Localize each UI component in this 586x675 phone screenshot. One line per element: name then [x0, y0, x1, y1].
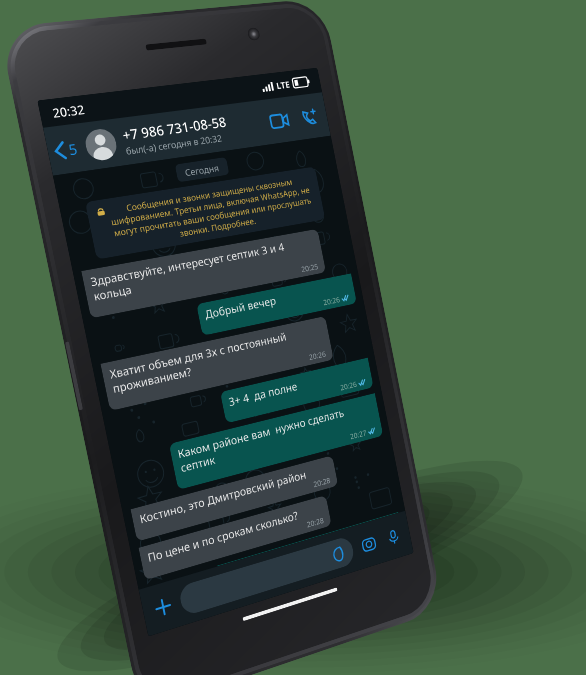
staticText: Хватит объем для 3х с постоянный прожива…	[108, 321, 325, 396]
staticText: Каком районе вам нужно сделать септик	[176, 398, 375, 475]
staticText: LTE	[275, 78, 291, 91]
staticText: 20:26	[308, 349, 327, 362]
staticText: 20:28	[312, 475, 332, 489]
staticText: был(-а) сегодня в 20:32	[125, 131, 223, 157]
button[interactable]: Хватит объем для 3х с постоянный прожива…	[100, 316, 334, 411]
button[interactable]: Contact photo	[83, 127, 119, 162]
staticText: Костино, это Дмитровский район	[138, 467, 307, 527]
button[interactable]: Костино, это Дмитровский район	[130, 455, 338, 542]
button[interactable]: +7 986 731-08-58	[121, 108, 267, 157]
button[interactable]: Back, 5 unread	[45, 132, 85, 168]
button[interactable]: По цене и по срокам сколько?	[138, 495, 332, 580]
staticText: Здравствуйте, интересует септик 3 и 4 ко…	[89, 234, 318, 304]
button[interactable]: Voice call	[290, 97, 328, 136]
staticText: Сообщения и звонки защищены сквозным шиф…	[106, 173, 316, 250]
button[interactable]: 3+ 4 да полне	[220, 357, 374, 423]
staticText: 20:27	[349, 427, 368, 441]
button[interactable]: Сообщения и звонки защищены сквозным шиф…	[85, 166, 325, 260]
staticText: 20:26	[322, 294, 341, 307]
button[interactable]: Attach	[148, 590, 179, 624]
staticText: По цене и по срокам сколько?	[146, 507, 300, 565]
button[interactable]: У нас 5500 за одно кольцо	[217, 512, 399, 566]
button[interactable]	[178, 535, 356, 617]
button[interactable]: Camera	[356, 529, 382, 560]
staticText: 20:25	[300, 261, 320, 274]
button[interactable]: Voice message	[380, 522, 406, 552]
button[interactable]: Каком районе вам нужно сделать септик	[169, 393, 383, 490]
staticText: 20:32	[51, 100, 86, 121]
staticText: Добрый вечер	[203, 292, 278, 322]
staticText: 20:26	[339, 379, 358, 392]
button[interactable]: Video call	[260, 102, 297, 139]
staticText: 5	[67, 138, 80, 159]
staticText: 20:28	[306, 515, 325, 529]
staticText: Сегодня	[184, 161, 221, 178]
staticText: +7 986 731-08-58	[121, 113, 228, 145]
button[interactable]: Добрый вечер	[196, 273, 357, 336]
staticText: 3+ 4 да полне	[227, 378, 299, 409]
button[interactable]: Здравствуйте, интересует септик 3 и 4 ко…	[81, 229, 326, 318]
